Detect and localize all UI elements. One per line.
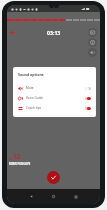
staticText: x <box>9 156 13 161</box>
button[interactable]: Back <box>27 192 36 201</box>
staticText: Voice Guide <box>26 96 85 100</box>
button[interactable]: Mute <box>18 83 91 93</box>
button[interactable]: Back <box>8 28 17 37</box>
button[interactable]: Home <box>49 192 58 201</box>
staticText: RIDER PUSH-UPS <box>9 162 31 166</box>
staticText: Coach tips <box>26 106 85 110</box>
button[interactable]: Cast screen <box>88 28 97 37</box>
staticText: 12 <box>13 152 21 161</box>
button[interactable]: Voice Guide <box>18 93 91 103</box>
staticText: 03:13 <box>47 29 61 36</box>
button[interactable]: Recents <box>71 192 80 201</box>
button[interactable]: Complete set <box>47 171 60 184</box>
button[interactable]: Sound options <box>88 48 97 57</box>
button[interactable]: Workout info <box>88 38 97 47</box>
staticText: Mute <box>26 86 85 90</box>
button[interactable]: Coach tips <box>18 103 91 113</box>
staticText: Sound options <box>18 72 44 77</box>
